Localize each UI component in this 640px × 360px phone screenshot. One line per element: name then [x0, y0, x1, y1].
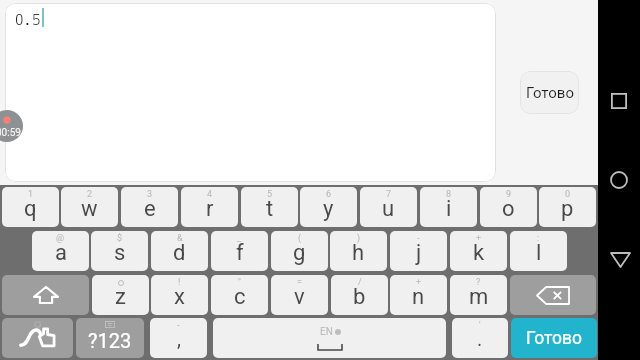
- staticText: f: [236, 240, 244, 266]
- staticText: p: [561, 196, 574, 222]
- button[interactable]: .: [452, 318, 508, 358]
- button[interactable]: g: [271, 231, 328, 271]
- staticText: n: [412, 284, 425, 310]
- staticText: -: [417, 233, 420, 244]
- staticText: k: [473, 240, 485, 266]
- staticText: !: [178, 277, 181, 288]
- staticText: EN: [320, 326, 333, 338]
- button[interactable]: a: [32, 231, 89, 271]
- button[interactable]: i: [420, 187, 477, 227]
- staticText: (: [298, 233, 302, 244]
- staticText: z: [115, 284, 126, 310]
- staticText: u: [382, 196, 395, 222]
- staticText: i: [446, 196, 452, 222]
- staticText: Готово: [526, 84, 574, 102]
- button[interactable]: j: [390, 231, 447, 271]
- button[interactable]: r: [181, 187, 238, 227]
- staticText: ": [238, 277, 241, 288]
- staticText: :: [537, 233, 540, 244]
- staticText: =: [297, 277, 302, 288]
- button[interactable]: v: [271, 275, 328, 315]
- staticText: a: [55, 240, 67, 266]
- staticText: q: [24, 196, 37, 222]
- staticText: o: [502, 196, 515, 222]
- button[interactable]: Готово: [511, 318, 597, 358]
- staticText: ): [357, 233, 361, 244]
- button[interactable]: [510, 275, 596, 315]
- staticText: +: [416, 277, 422, 288]
- staticText: 3: [147, 189, 153, 200]
- staticText: v: [294, 284, 305, 310]
- staticText: 5: [267, 189, 273, 200]
- staticText: _: [237, 233, 242, 244]
- button[interactable]: h: [330, 231, 387, 271]
- staticText: 6: [326, 189, 332, 200]
- staticText: $: [117, 233, 123, 244]
- staticText: +: [476, 233, 482, 244]
- button[interactable]: o: [480, 187, 537, 227]
- button[interactable]: Готово: [520, 71, 579, 114]
- button[interactable]: Home: [598, 157, 640, 199]
- staticText: m: [469, 284, 489, 310]
- staticText: ?123: [88, 329, 132, 352]
- button[interactable]: l: [510, 231, 567, 271]
- staticText: 4: [207, 189, 213, 200]
- button[interactable]: q: [2, 187, 59, 227]
- button[interactable]: m: [450, 275, 507, 315]
- button[interactable]: w: [61, 187, 118, 227]
- staticText: y: [323, 196, 334, 222]
- button[interactable]: Recording timer 00:59: [0, 110, 23, 142]
- button[interactable]: s: [91, 231, 148, 271]
- staticText: Готово: [526, 328, 582, 349]
- button[interactable]: Back: [598, 237, 640, 279]
- staticText: &: [177, 233, 183, 244]
- staticText: j: [416, 240, 422, 266]
- staticText: w: [81, 196, 98, 222]
- staticText: h: [352, 240, 365, 266]
- staticText: 7: [386, 189, 392, 200]
- button[interactable]: y: [300, 187, 357, 227]
- button[interactable]: e: [121, 187, 178, 227]
- button[interactable]: p: [539, 187, 596, 227]
- button[interactable]: 0.5: [5, 3, 496, 182]
- staticText: t: [266, 196, 274, 222]
- staticText: 00:59: [0, 127, 21, 139]
- staticText: x: [174, 284, 185, 310]
- staticText: s: [114, 240, 126, 266]
- staticText: @: [56, 233, 65, 244]
- button[interactable]: x: [151, 275, 208, 315]
- staticText: 0.5: [15, 12, 41, 29]
- staticText: d: [173, 240, 186, 266]
- button[interactable]: [2, 275, 89, 315]
- staticText: /: [358, 277, 362, 288]
- button[interactable]: z: [92, 275, 149, 315]
- button[interactable]: k: [450, 231, 507, 271]
- button[interactable]: b: [331, 275, 388, 315]
- staticText: b: [353, 284, 366, 310]
- button[interactable]: f: [211, 231, 268, 271]
- button[interactable]: Recent apps: [598, 79, 640, 121]
- button[interactable]: n: [390, 275, 447, 315]
- staticText: 1: [28, 189, 34, 200]
- staticText: 9: [506, 189, 512, 200]
- staticText: c: [234, 284, 246, 310]
- staticText: 8: [446, 189, 452, 200]
- button[interactable]: d: [151, 231, 208, 271]
- button[interactable]: [2, 318, 73, 358]
- button[interactable]: ,: [150, 318, 207, 358]
- button[interactable]: EN: [213, 318, 446, 358]
- staticText: g: [293, 240, 306, 266]
- button[interactable]: u: [360, 187, 417, 227]
- staticText: e: [144, 196, 156, 222]
- button[interactable]: ?123: [76, 318, 144, 358]
- staticText: -: [177, 320, 180, 331]
- staticText: .: [477, 327, 483, 350]
- staticText: ,: [177, 327, 181, 350]
- button[interactable]: c: [211, 275, 268, 315]
- button[interactable]: t: [241, 187, 298, 227]
- staticText: ': [479, 320, 481, 331]
- staticText: 0: [565, 189, 571, 200]
- staticText: 2: [87, 189, 93, 200]
- staticText: ?: [476, 277, 481, 288]
- staticText: l: [536, 240, 542, 266]
